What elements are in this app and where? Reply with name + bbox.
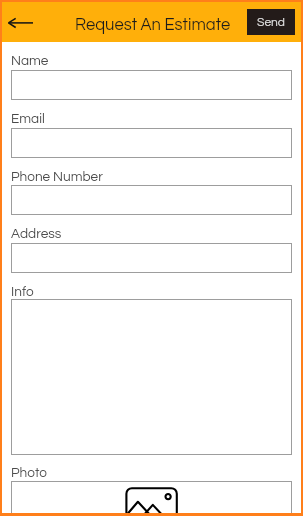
staticText: Send	[257, 16, 285, 28]
other: Add photo	[120, 484, 184, 516]
staticText: Address	[11, 227, 62, 241]
staticText: Email	[11, 112, 45, 126]
button[interactable]	[11, 243, 292, 273]
button[interactable]: Send	[247, 9, 295, 35]
button[interactable]	[11, 481, 292, 516]
staticText: Info	[11, 285, 34, 299]
staticText: Name	[11, 54, 49, 68]
button[interactable]	[11, 185, 292, 215]
button[interactable]	[11, 299, 292, 455]
staticText: Phone Number	[11, 170, 103, 184]
button[interactable]	[11, 128, 292, 158]
staticText: Photo	[11, 466, 47, 480]
staticText: Request An Estimate	[75, 16, 231, 33]
button[interactable]: Back	[2, 8, 40, 36]
button[interactable]	[11, 70, 292, 100]
